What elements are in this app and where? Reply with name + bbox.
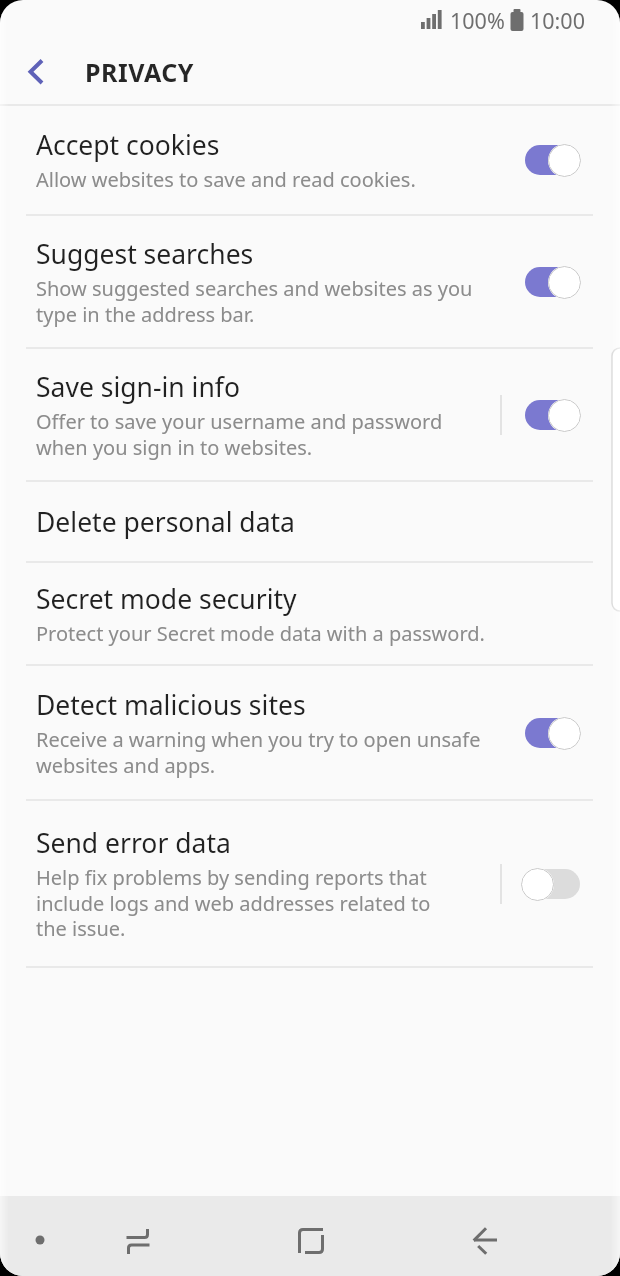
staticText: Allow websites to save and read cookies.	[36, 166, 416, 193]
staticText: Delete personal data	[36, 504, 295, 540]
staticText: Accept cookies	[36, 127, 220, 163]
button[interactable]	[524, 716, 580, 750]
button[interactable]: Accept cookies	[0, 106, 620, 214]
button[interactable]	[524, 867, 580, 901]
button[interactable]: Delete personal data	[0, 482, 620, 561]
button[interactable]: Save sign-in info	[0, 349, 620, 480]
staticText: Help fix problems by sending reports tha…	[36, 864, 431, 942]
button[interactable]	[114, 1216, 162, 1264]
staticText: Detect malicious sites	[36, 687, 306, 723]
staticText: 10:00	[530, 6, 585, 35]
staticText: Send error data	[36, 825, 231, 861]
button[interactable]	[287, 1213, 335, 1261]
staticText: Secret mode security	[36, 581, 297, 617]
staticText: 100%	[450, 6, 505, 35]
button[interactable]	[12, 47, 62, 97]
button[interactable]: Secret mode security	[0, 563, 620, 664]
button[interactable]	[524, 265, 580, 299]
button[interactable]	[524, 398, 580, 432]
button[interactable]	[461, 1216, 509, 1264]
button[interactable]: Detect malicious sites	[0, 666, 620, 799]
button[interactable]	[31, 1231, 49, 1249]
button[interactable]	[524, 143, 580, 177]
staticText: Receive a warning when you try to open u…	[36, 726, 481, 779]
staticText: Save sign-in info	[36, 369, 240, 405]
staticText: Suggest searches	[36, 236, 254, 272]
staticText: Show suggested searches and websites as …	[36, 275, 473, 328]
button[interactable]: Suggest searches	[0, 216, 620, 347]
button[interactable]: Send error data	[0, 801, 620, 966]
staticText: Protect your Secret mode data with a pas…	[36, 620, 485, 647]
staticText: Offer to save your username and password…	[36, 408, 443, 461]
staticText: PRIVACY	[85, 55, 194, 89]
